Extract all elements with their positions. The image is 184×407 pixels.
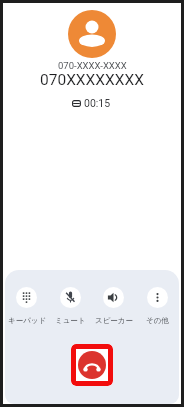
staticText: 070-XXXX-XXXX: [58, 60, 127, 71]
staticText: スピーカー: [95, 316, 134, 325]
button[interactable]: [147, 287, 168, 308]
button[interactable]: [60, 287, 81, 308]
staticText: その他: [146, 316, 169, 325]
button[interactable]: [71, 344, 113, 386]
button[interactable]: [103, 287, 124, 308]
button[interactable]: [16, 287, 37, 308]
staticText: 00:15: [84, 97, 111, 109]
staticText: キーパッド: [8, 316, 47, 325]
staticText: 070XXXXXXXX: [40, 71, 144, 89]
staticText: ミュート: [55, 316, 86, 325]
